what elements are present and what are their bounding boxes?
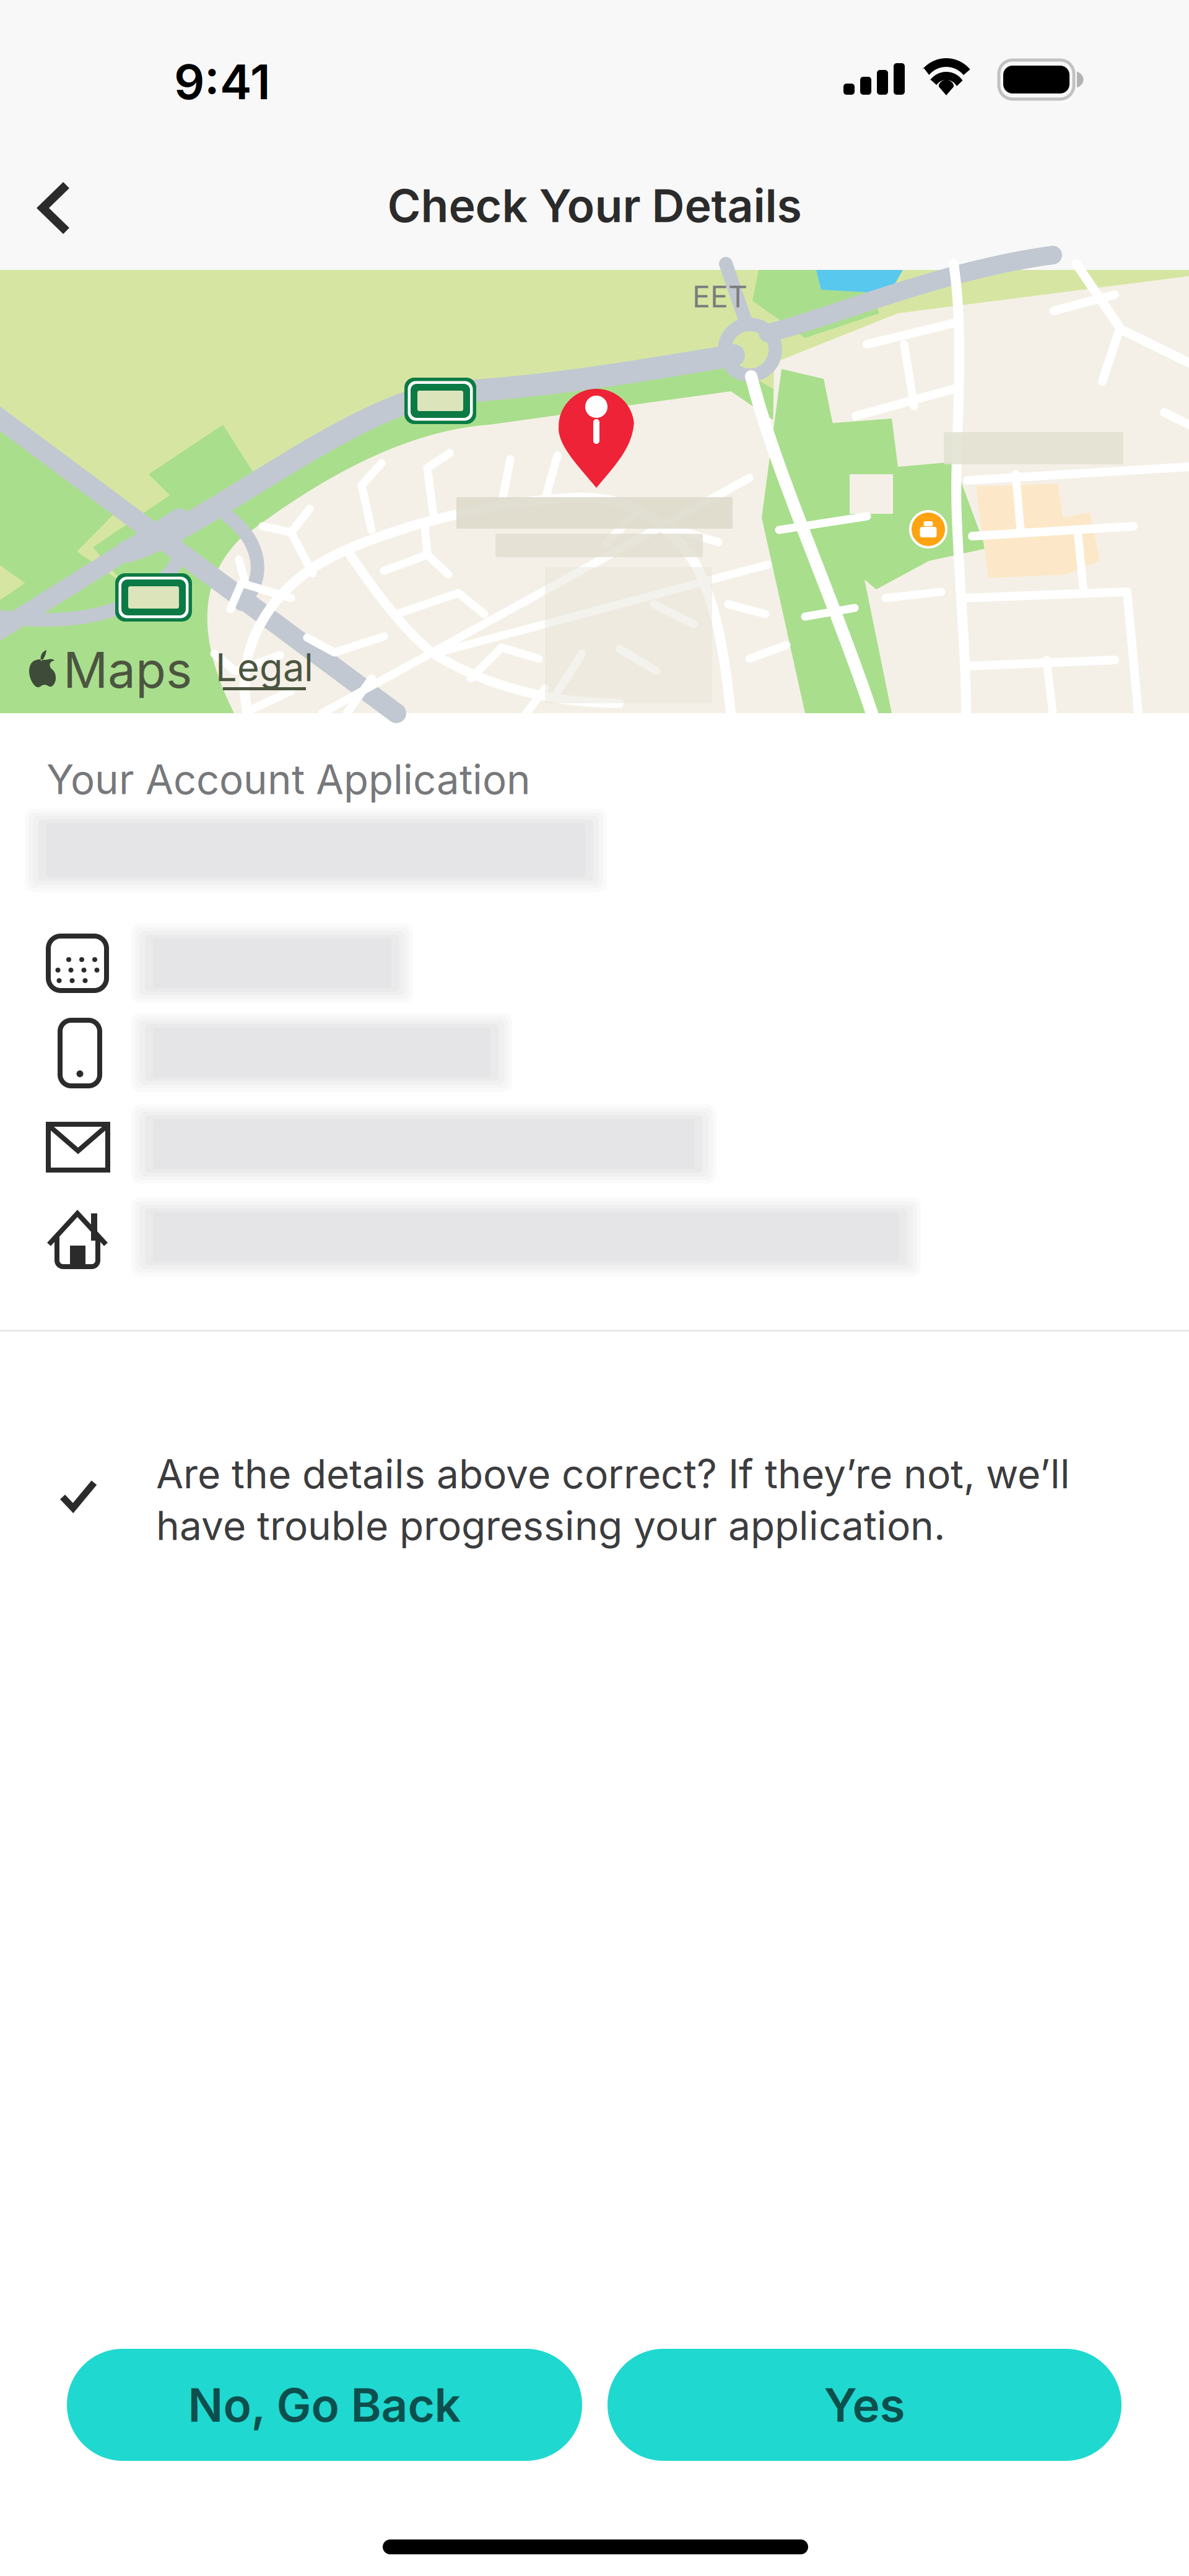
staticText: Check Your Details: [387, 178, 802, 233]
button[interactable]: Yes: [608, 2349, 1121, 2461]
staticText: No, Go Back: [188, 2377, 461, 2433]
button[interactable]: No, Go Back: [67, 2349, 582, 2461]
staticText: 9:41: [174, 53, 271, 111]
staticText: EET: [692, 279, 747, 314]
staticText: Yes: [824, 2377, 905, 2433]
staticText: Legal: [216, 644, 313, 690]
staticText: Maps: [63, 640, 192, 700]
staticText: Are the details above correct? If they’r…: [156, 1450, 1070, 1498]
staticText: have trouble progressing your applicatio…: [156, 1502, 945, 1549]
staticText: Your Account Application: [46, 755, 531, 804]
button[interactable]: Back: [0, 135, 155, 281]
